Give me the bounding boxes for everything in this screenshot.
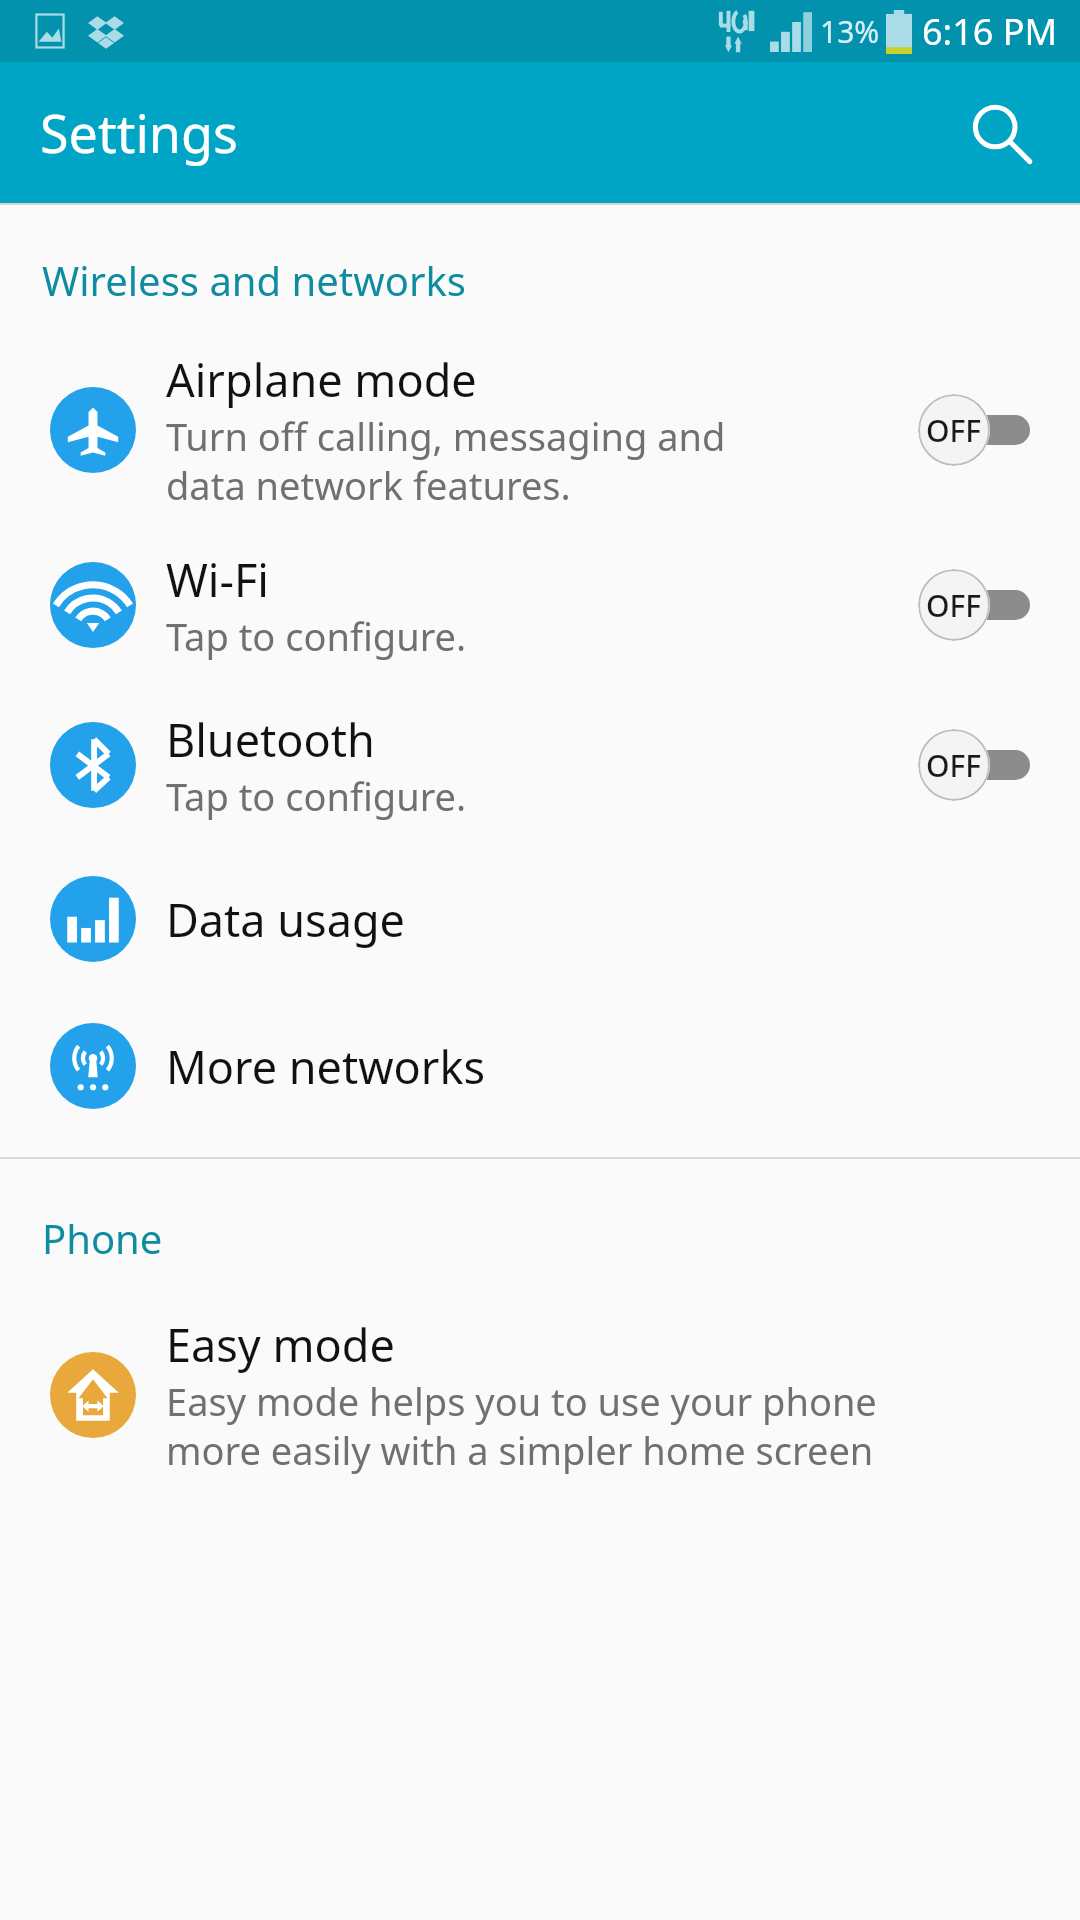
staticText: Airplane mode — [166, 349, 477, 410]
button[interactable]: Easy mode — [0, 1295, 1080, 1495]
staticText: Easy mode helps you to use your phone mo… — [166, 1375, 877, 1476]
button[interactable]: Toggle off — [916, 562, 1036, 648]
button[interactable]: Data usage — [0, 845, 1080, 993]
staticText: Easy mode — [166, 1314, 395, 1375]
button[interactable]: More networks — [0, 993, 1080, 1139]
staticText: Tap to configure. — [166, 610, 467, 662]
button[interactable]: Toggle off — [916, 722, 1036, 808]
staticText: Wi-Fi — [166, 549, 269, 610]
button[interactable]: Airplane mode — [0, 335, 1080, 525]
button[interactable]: Search — [954, 87, 1046, 179]
button[interactable]: Wi-Fi — [0, 525, 1080, 685]
staticText: OFF — [926, 410, 982, 451]
staticText: OFF — [926, 745, 982, 786]
staticText: Tap to configure. — [166, 770, 467, 822]
staticText: Wireless and networks — [42, 253, 466, 307]
staticText: 6:16 PM — [922, 7, 1058, 56]
staticText: 13% — [820, 11, 880, 52]
button[interactable]: Toggle off — [916, 387, 1036, 473]
staticText: Data usage — [166, 889, 405, 950]
staticText: Turn off calling, messaging and data net… — [166, 410, 726, 511]
staticText: More networks — [166, 1036, 486, 1097]
button[interactable]: Bluetooth — [0, 685, 1080, 845]
staticText: OFF — [926, 585, 982, 626]
staticText: Phone — [42, 1211, 163, 1265]
staticText: Bluetooth — [166, 709, 375, 770]
staticText: Settings — [40, 97, 238, 168]
